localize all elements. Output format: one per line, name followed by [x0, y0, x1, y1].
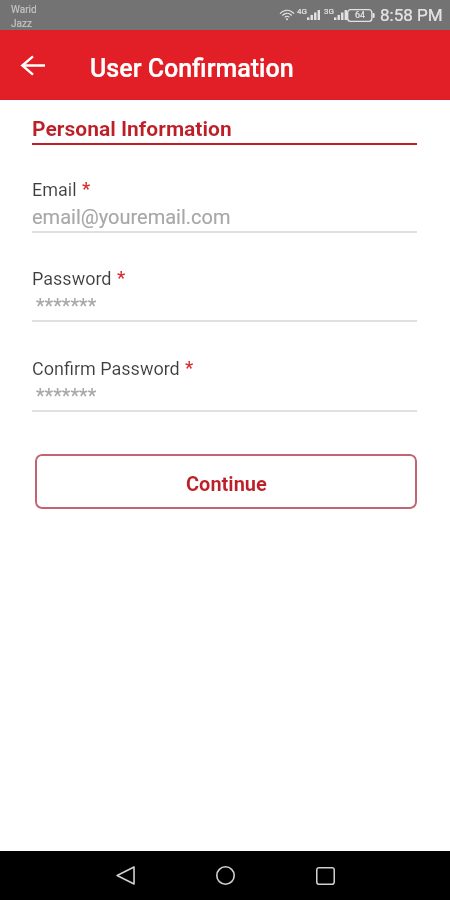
- staticText: Email: [32, 179, 77, 200]
- staticText: Password: [32, 268, 112, 289]
- staticText: 4G: [297, 7, 307, 16]
- staticText: *******: [36, 294, 97, 317]
- staticText: Personal Information: [32, 117, 232, 142]
- staticText: Continue: [186, 472, 267, 495]
- staticText: Warid: [11, 4, 37, 16]
- staticText: Confirm Password: [32, 358, 180, 379]
- staticText: *******: [36, 384, 97, 407]
- button[interactable]: Recent apps: [295, 851, 355, 900]
- button[interactable]: Continue: [35, 454, 417, 509]
- staticText: User Confirmation: [90, 54, 294, 83]
- staticText: 3G: [324, 7, 334, 16]
- button[interactable]: Navigate up: [9, 41, 57, 89]
- staticText: *: [117, 267, 126, 288]
- staticText: *: [82, 178, 91, 199]
- staticText: *: [185, 357, 194, 378]
- button[interactable]: Home: [195, 851, 255, 900]
- staticText: 64: [355, 10, 366, 21]
- staticText: 8:58 PM: [380, 5, 443, 25]
- staticText: Jazz: [11, 18, 32, 30]
- button[interactable]: Back: [95, 851, 155, 900]
- staticText: email@youremail.com: [32, 205, 231, 228]
